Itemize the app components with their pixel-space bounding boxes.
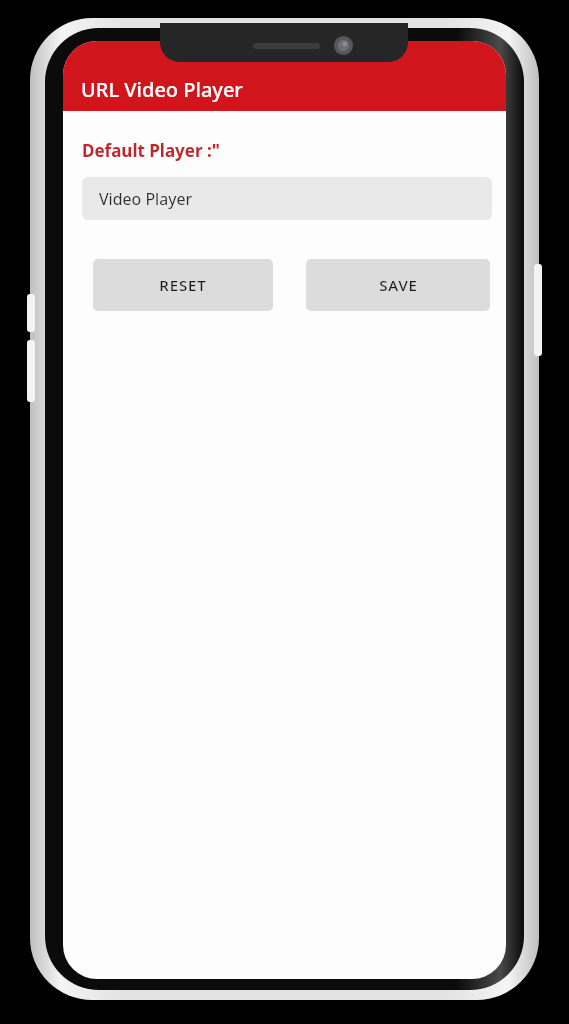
staticText: SAVE [379, 275, 418, 295]
button[interactable]: SAVE [306, 259, 490, 311]
other: Volume up [27, 294, 35, 332]
other: Volume down [27, 340, 35, 402]
button[interactable]: RESET [93, 259, 273, 311]
staticText: Default Player :" [82, 139, 220, 162]
other: Power [534, 264, 542, 356]
staticText: RESET [159, 275, 207, 295]
staticText: URL Video Player [81, 76, 243, 103]
staticText: Video Player [99, 188, 193, 210]
button[interactable]: Video Player [82, 177, 492, 220]
